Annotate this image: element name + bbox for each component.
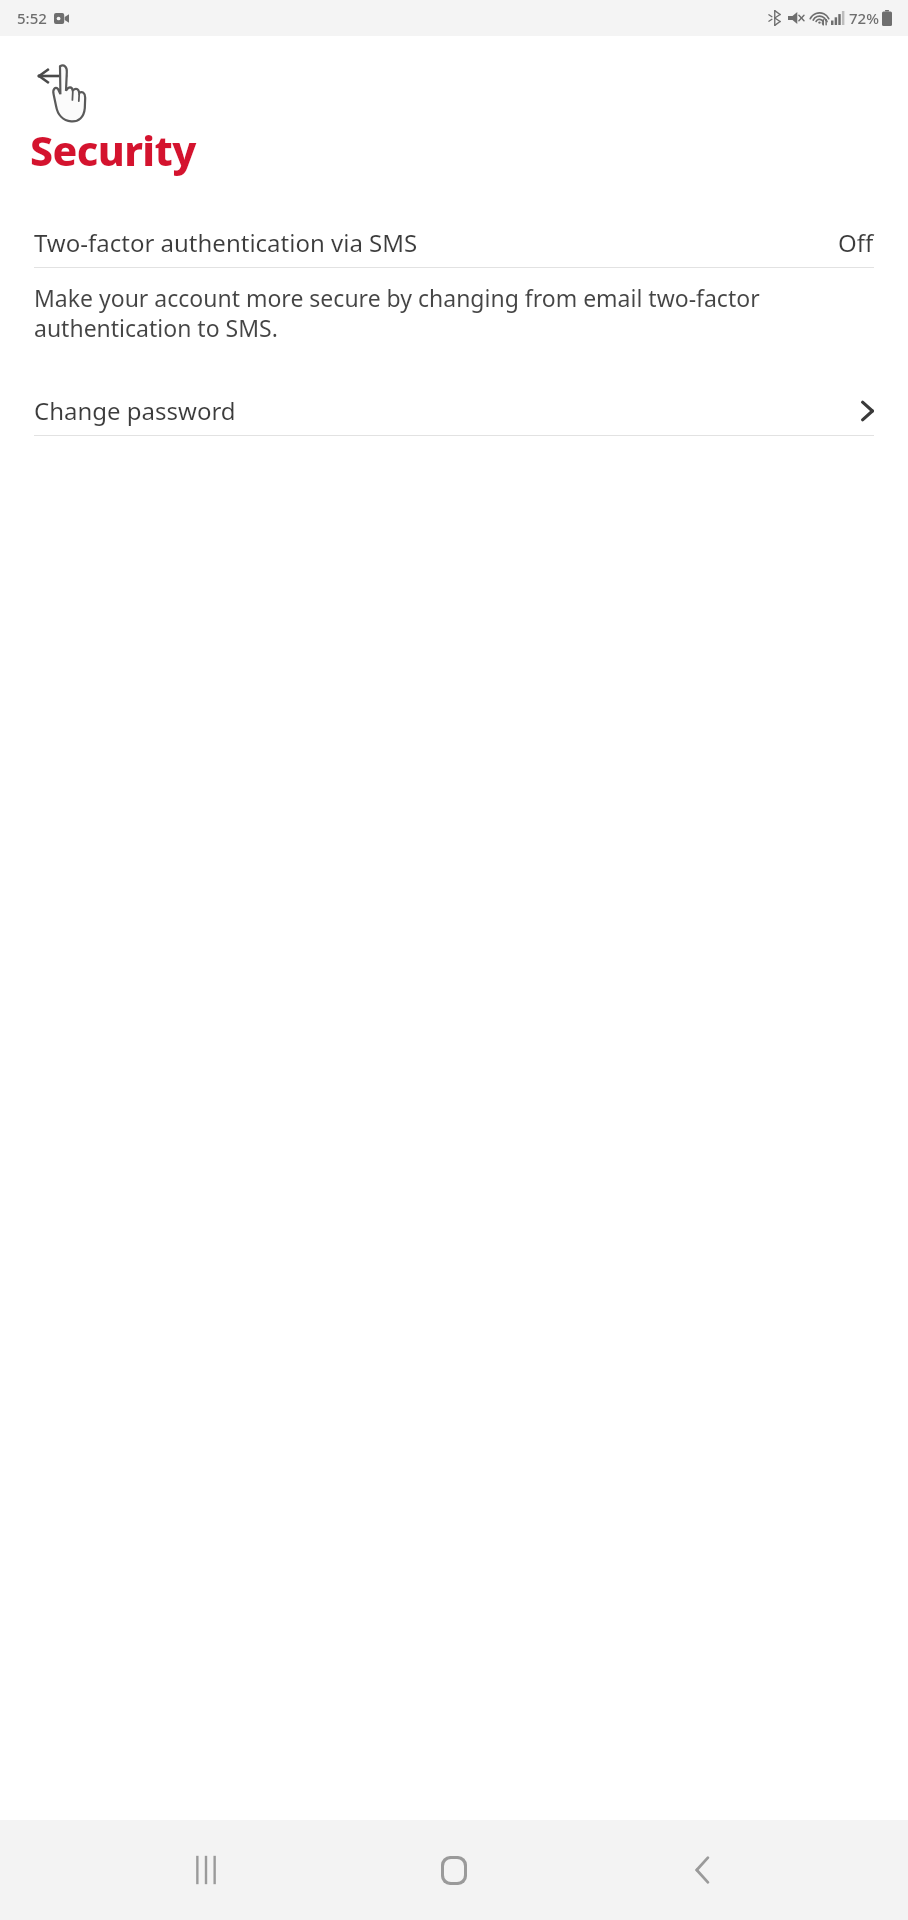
button[interactable]: Home — [412, 1828, 496, 1912]
staticText: 72% — [849, 8, 879, 28]
staticText: Off — [838, 226, 874, 259]
staticText: Two-factor authentication via SMS — [34, 226, 826, 259]
staticText: Change password — [34, 394, 861, 427]
button[interactable]: Recent apps — [164, 1828, 248, 1912]
staticText: Security — [30, 122, 196, 178]
button[interactable]: Back — [28, 52, 76, 100]
button[interactable]: Change password — [0, 386, 908, 435]
staticText: 5:52 — [17, 8, 47, 28]
button[interactable]: Back — [660, 1828, 744, 1912]
staticText: Make your account more secure by changin… — [34, 282, 868, 344]
button[interactable]: Two-factor authentication via SMS — [0, 218, 908, 267]
